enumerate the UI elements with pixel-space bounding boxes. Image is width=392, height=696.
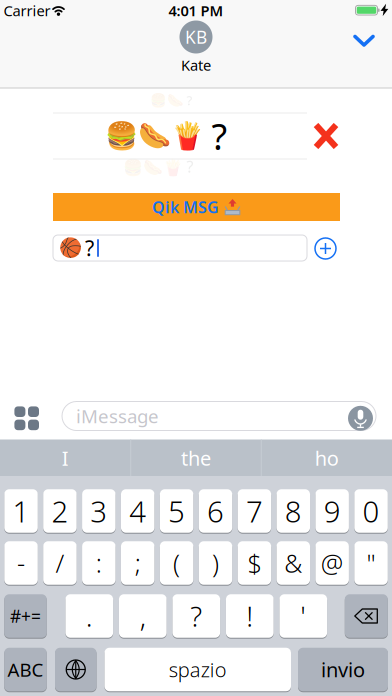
button[interactable]: I — [5, 439, 125, 476]
button[interactable]: Qik MSG — [53, 193, 340, 221]
staticText: #+= — [10, 604, 41, 627]
staticText: 2 — [51, 491, 68, 530]
staticText: " — [367, 546, 376, 580]
button[interactable]: ) — [199, 541, 232, 585]
staticText: 3 — [90, 491, 107, 530]
button[interactable]: Message text field — [53, 235, 307, 261]
staticText: ? — [211, 112, 227, 160]
staticText: ! — [246, 597, 253, 635]
button[interactable]: Dismiss Conversation — [349, 30, 379, 50]
button[interactable]: ! — [226, 594, 274, 638]
button[interactable]: Dictate — [348, 406, 373, 431]
button[interactable]: 1 — [4, 489, 38, 533]
staticText: Carrier — [3, 1, 50, 20]
button[interactable]: 7 — [238, 489, 271, 533]
staticText: Qik MSG — [152, 196, 219, 218]
staticText: 6 — [207, 491, 224, 530]
button[interactable]: 9 — [315, 489, 349, 533]
button[interactable]: ' — [279, 594, 327, 638]
button[interactable]: @ — [315, 541, 349, 585]
button[interactable]: Delete — [345, 594, 388, 638]
staticText: ho — [315, 445, 339, 471]
staticText: 7 — [246, 491, 263, 530]
button[interactable]: 5 — [160, 489, 193, 533]
staticText: @ — [321, 546, 344, 580]
button[interactable]: 8 — [276, 489, 310, 533]
button[interactable]: ; — [121, 541, 154, 585]
button[interactable]: 0 — [354, 489, 388, 533]
staticText: - — [17, 546, 25, 580]
button[interactable]: ( — [160, 541, 193, 585]
button[interactable]: iMessage text field — [62, 401, 376, 430]
staticText: 🍔🌭 ? — [149, 91, 192, 109]
staticText: invio — [321, 656, 365, 683]
button[interactable]: iMessage Apps — [14, 406, 40, 430]
button[interactable]: ? — [172, 594, 220, 638]
button[interactable]: the — [136, 439, 256, 476]
staticText: 4 — [129, 491, 146, 530]
staticText: ' — [300, 597, 306, 635]
staticText: ; — [135, 546, 141, 580]
staticText: ? — [190, 597, 202, 635]
staticText: : — [96, 546, 102, 580]
staticText: ? — [85, 234, 94, 262]
staticText: I — [62, 445, 69, 471]
button[interactable]: ho — [267, 439, 387, 476]
button[interactable]: ABC — [4, 648, 47, 691]
button[interactable]: , — [119, 594, 167, 638]
staticText: Kate — [181, 55, 211, 75]
button[interactable]: & — [276, 541, 310, 585]
button[interactable]: spazio — [104, 648, 291, 691]
staticText: 🏀 — [59, 237, 82, 259]
staticText: ABC — [7, 657, 43, 682]
button[interactable]: 2 — [43, 489, 77, 533]
staticText: 8 — [285, 491, 302, 530]
staticText: the — [181, 445, 211, 471]
staticText: , — [140, 597, 146, 635]
button[interactable]: 3 — [82, 489, 116, 533]
button[interactable]: . — [65, 594, 113, 638]
button[interactable]: #+= — [4, 594, 47, 638]
staticText: / — [55, 546, 64, 580]
button[interactable]: $ — [238, 541, 271, 585]
staticText: 🍔🌭🍟 ? — [122, 156, 193, 177]
staticText: . — [86, 597, 93, 635]
staticText: ) — [212, 546, 219, 580]
staticText: spazio — [169, 656, 227, 683]
button[interactable]: 6 — [199, 489, 232, 533]
button[interactable]: Clear — [311, 121, 341, 151]
button[interactable]: invio — [298, 648, 388, 691]
staticText: iMessage — [76, 404, 159, 428]
button[interactable]: 4 — [121, 489, 154, 533]
button[interactable]: Add — [312, 235, 338, 261]
staticText: & — [284, 546, 302, 580]
staticText: 5 — [168, 491, 185, 530]
button[interactable]: : — [82, 541, 116, 585]
staticText: 9 — [324, 491, 341, 530]
button[interactable]: " — [354, 541, 388, 585]
staticText: 1 — [13, 491, 30, 530]
staticText: 🍔🌭🍟 — [104, 121, 203, 151]
staticText: ( — [173, 546, 180, 580]
button[interactable]: / — [43, 541, 77, 585]
staticText: KB — [185, 25, 207, 48]
staticText: 4:01 PM — [168, 1, 223, 20]
staticText: 0 — [363, 491, 380, 530]
button[interactable]: Next Keyboard — [55, 648, 96, 691]
staticText: $ — [247, 546, 261, 580]
button[interactable]: - — [4, 541, 38, 585]
